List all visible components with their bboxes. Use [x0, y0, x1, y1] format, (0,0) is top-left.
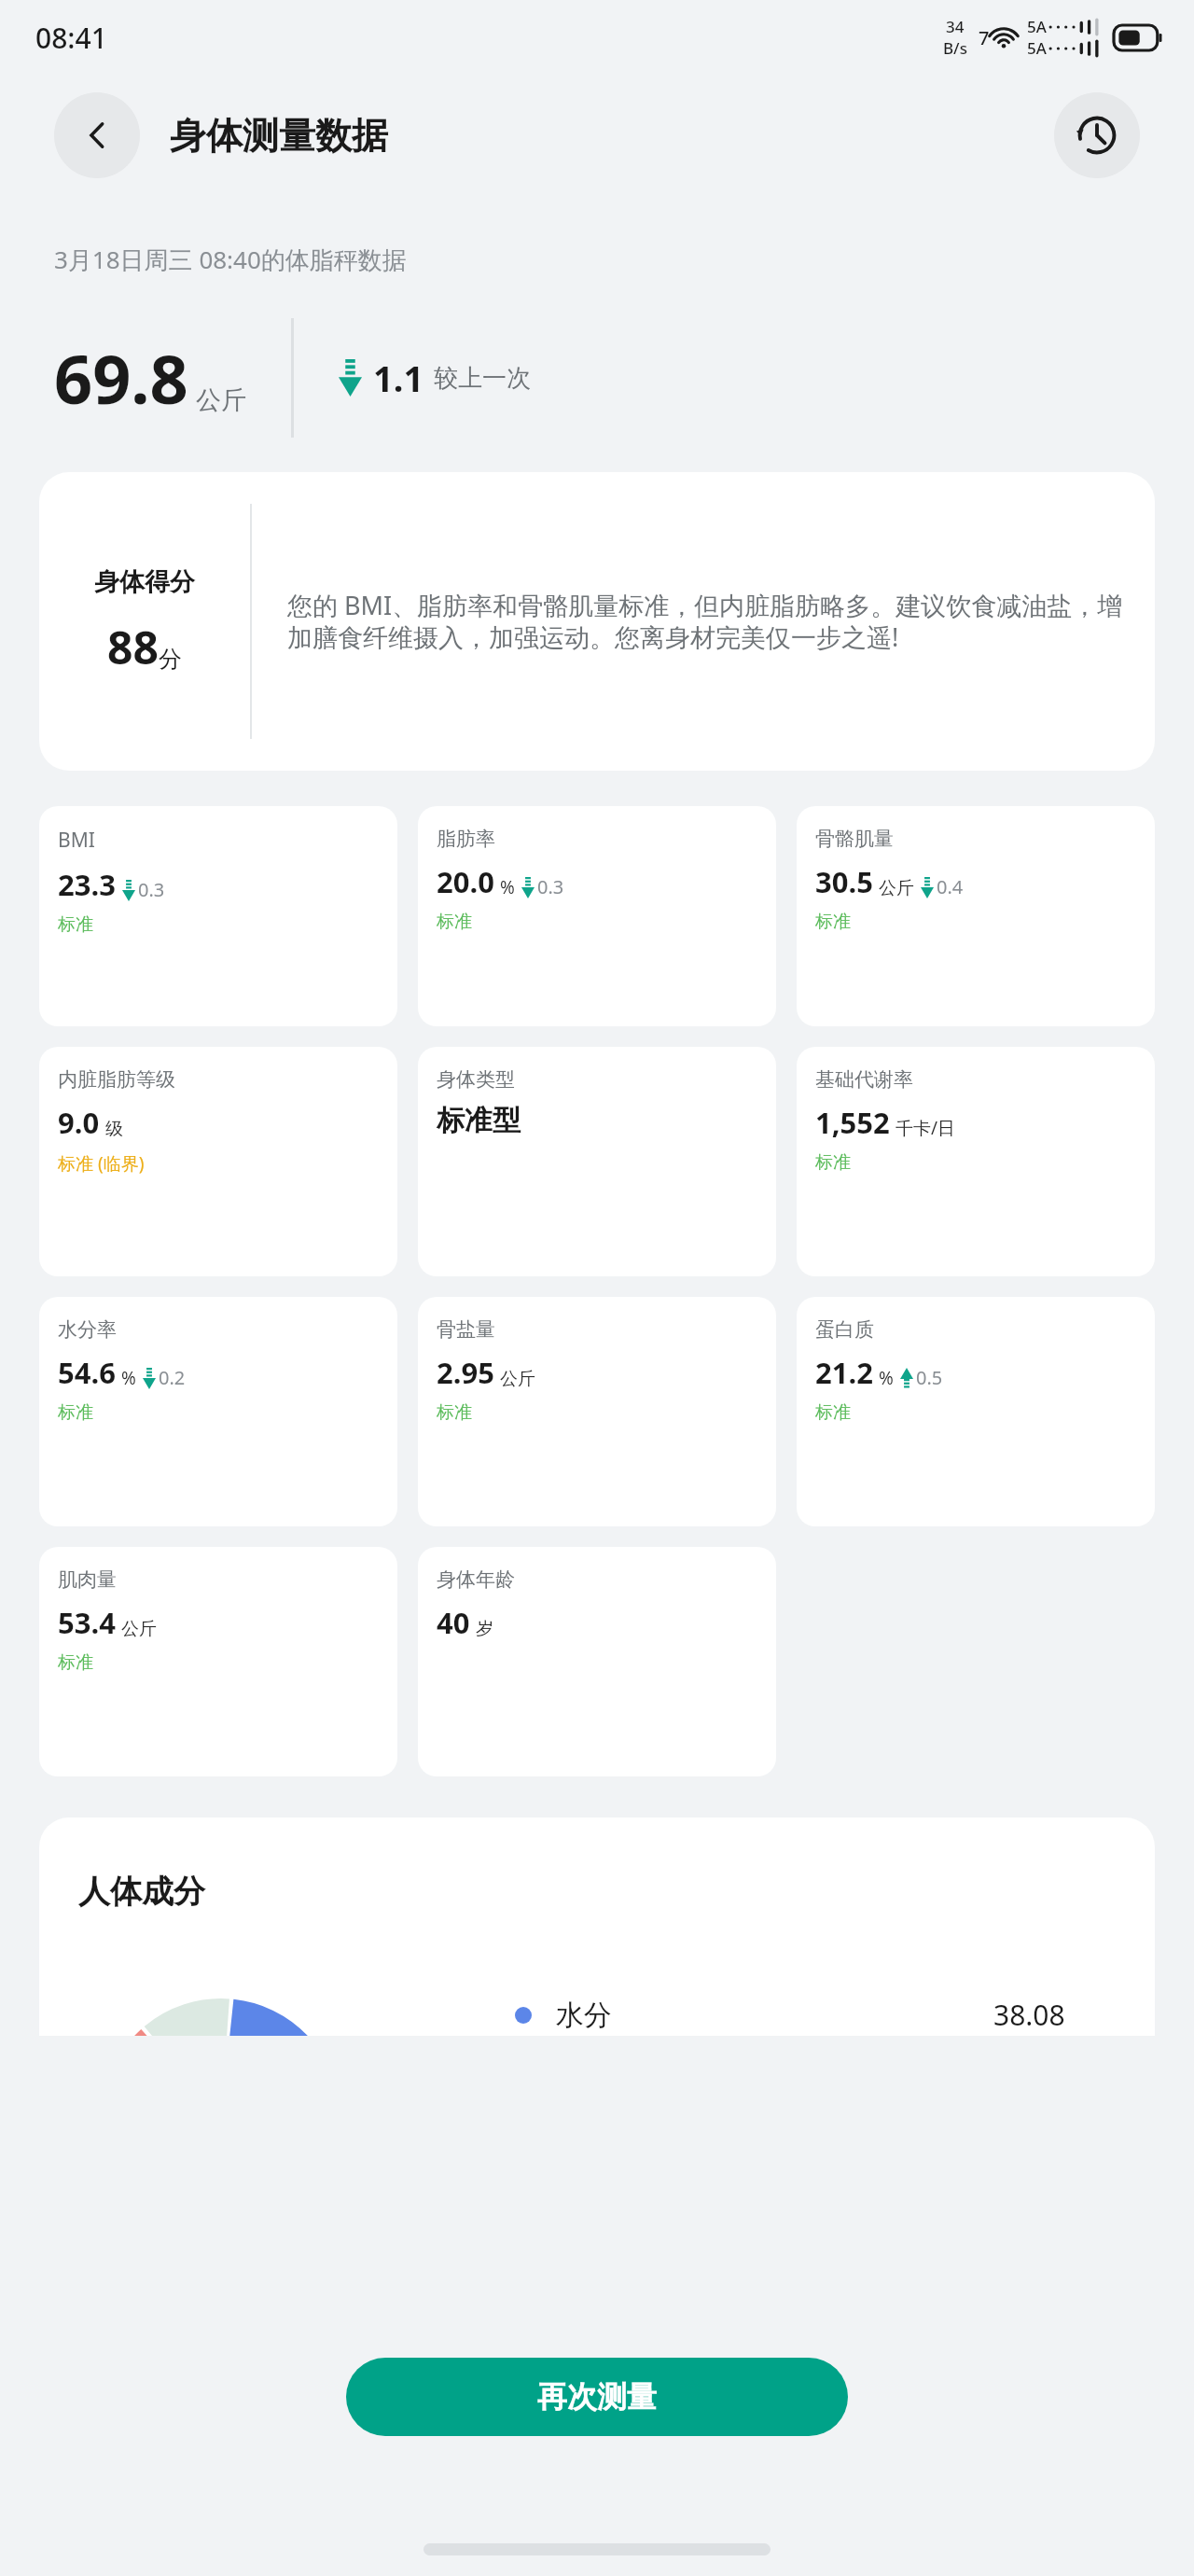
staticText: 水分率 [58, 1317, 117, 1342]
staticText: 水分 [556, 1998, 612, 2033]
button[interactable]: 蛋白质 [797, 1297, 1155, 1526]
staticText: 蛋白质 [815, 1317, 874, 1342]
staticText: 身体测量数据 [170, 113, 1054, 159]
button[interactable]: 身体年龄 [418, 1547, 776, 1776]
staticText: 0.5 [916, 1365, 943, 1390]
staticText: 您的 BMI、脂肪率和骨骼肌量标准，但内脏脂肪略多。建议饮食减油盐，增加膳食纤维… [287, 588, 1127, 655]
staticText: 69.8 [54, 332, 188, 424]
staticText: 标准 [437, 1401, 472, 1424]
staticText: 岁 [476, 1618, 493, 1640]
staticText: 较上一次 [434, 363, 531, 394]
staticText: 5A [1027, 16, 1047, 37]
staticText: % [879, 1366, 894, 1390]
staticText: 再次测量 [537, 2378, 657, 2416]
button[interactable]: 身体得分 [39, 472, 1155, 771]
staticText: 5A [1027, 37, 1047, 59]
staticText: 20.0 [437, 862, 494, 901]
button[interactable]: 人体成分 [39, 1817, 1155, 2036]
staticText: 千卡/日 [895, 1116, 956, 1140]
staticText: 标准 [815, 1401, 851, 1424]
staticText: 身体年龄 [437, 1567, 515, 1592]
button[interactable]: 内脏脂肪等级 [39, 1047, 397, 1276]
staticText: 脂肪率 [437, 827, 495, 851]
staticText: 08:41 [35, 19, 107, 57]
staticText: 标准 [58, 913, 93, 936]
staticText: 身体类型 [437, 1067, 515, 1092]
staticText: 标准 [437, 911, 472, 933]
staticText: 0.2 [159, 1365, 186, 1390]
staticText: BMI [58, 827, 95, 854]
staticText: 1.1 [373, 354, 424, 402]
button[interactable]: 肌肉量 [39, 1547, 397, 1776]
staticText: 21.2 [815, 1353, 873, 1392]
staticText: 53.4 [58, 1603, 116, 1642]
staticText: 标准型 [437, 1103, 521, 1138]
staticText: 30.5 [815, 862, 873, 901]
staticText: 88 [107, 617, 159, 677]
staticText: 23.3 [58, 865, 116, 904]
staticText: 标准 (临界) [58, 1151, 145, 1176]
staticText: 标准 [815, 1151, 851, 1174]
staticText: 肌肉量 [58, 1567, 117, 1592]
staticText: 0.3 [138, 877, 165, 902]
button[interactable]: 身体类型 [418, 1047, 776, 1276]
staticText: % [500, 875, 515, 899]
button[interactable]: Back [54, 92, 140, 178]
staticText: 人体成分 [78, 1872, 205, 1912]
staticText: 0.4 [937, 874, 964, 899]
button[interactable]: BMI [39, 806, 397, 1026]
staticText: 2.95 [437, 1353, 494, 1392]
staticText: 骨骼肌量 [815, 827, 894, 851]
staticText: 分 [159, 645, 182, 674]
staticText: 0.3 [537, 874, 564, 899]
staticText: 标准 [58, 1651, 93, 1674]
button[interactable]: 再次测量 [346, 2358, 848, 2436]
button[interactable]: 脂肪率 [418, 806, 776, 1026]
staticText: 公斤 [500, 1368, 535, 1390]
staticText: B/s [943, 37, 967, 59]
staticText: 3月18日周三 08:40的体脂秤数据 [54, 243, 407, 276]
staticText: 级 [105, 1118, 123, 1140]
staticText: % [121, 1366, 136, 1390]
staticText: 公斤 [121, 1618, 157, 1640]
staticText: 54.6 [58, 1353, 116, 1392]
staticText: 标准 [58, 1401, 93, 1424]
staticText: 9.0 [58, 1103, 100, 1142]
staticText: 34 [946, 16, 965, 37]
staticText: 7 [979, 25, 990, 50]
staticText: 38.08 [993, 1996, 1065, 2034]
button[interactable]: 水分率 [39, 1297, 397, 1526]
staticText: 40 [437, 1603, 470, 1642]
staticText: 公斤 [196, 384, 246, 416]
button[interactable]: 骨盐量 [418, 1297, 776, 1526]
staticText: 内脏脂肪等级 [58, 1067, 175, 1092]
staticText: 1,552 [815, 1103, 890, 1142]
button[interactable]: 基础代谢率 [797, 1047, 1155, 1276]
staticText: 骨盐量 [437, 1317, 495, 1342]
staticText: 标准 [815, 911, 851, 933]
staticText: 身体得分 [94, 566, 195, 598]
staticText: 基础代谢率 [815, 1067, 913, 1092]
button[interactable]: 骨骼肌量 [797, 806, 1155, 1026]
staticText: 公斤 [879, 877, 914, 899]
button[interactable]: History [1054, 92, 1140, 178]
